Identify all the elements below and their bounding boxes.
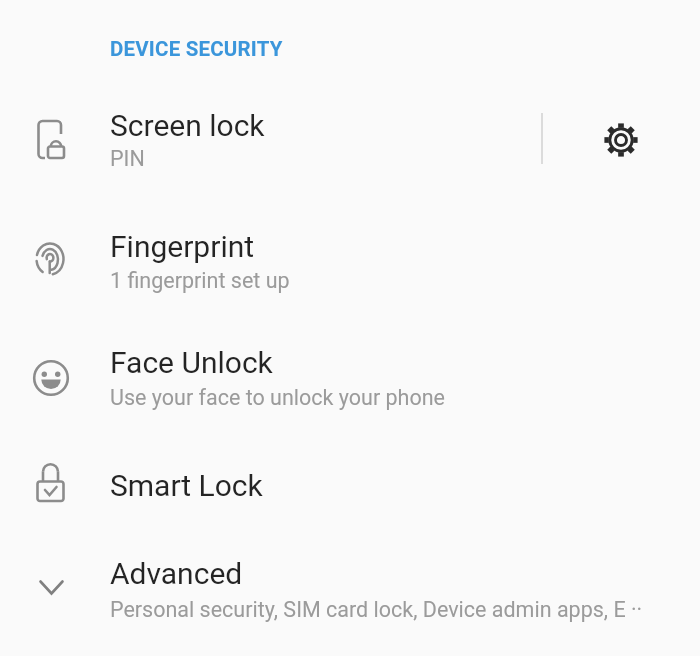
staticText: Face Unlock <box>110 345 273 380</box>
staticText: Personal security, SIM card lock, Device… <box>110 597 643 622</box>
staticText: Advanced <box>110 556 243 591</box>
button[interactable] <box>0 200 700 320</box>
staticText: 1 fingerprint set up <box>110 268 290 293</box>
staticText: Use your face to unlock your phone <box>110 385 445 410</box>
staticText: Smart Lock <box>110 468 263 503</box>
button[interactable] <box>0 85 700 200</box>
staticText: PIN <box>110 146 145 171</box>
staticText: DEVICE SECURITY <box>110 37 283 61</box>
button[interactable] <box>585 104 657 176</box>
staticText: Screen lock <box>110 108 265 143</box>
button[interactable] <box>0 320 700 440</box>
staticText: Fingerprint <box>110 229 255 264</box>
button[interactable] <box>0 440 700 530</box>
button[interactable] <box>0 530 700 656</box>
